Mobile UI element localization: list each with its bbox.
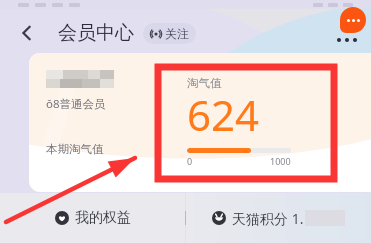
button[interactable]: Back: [10, 16, 44, 50]
staticText: 本期淘气值: [46, 142, 104, 156]
button[interactable]: Menu: [333, 36, 361, 44]
staticText: 天猫积分 1.: [232, 209, 304, 228]
staticText: 1000: [270, 155, 291, 167]
staticText: ŏ8普通会员: [46, 96, 106, 112]
button[interactable]: 我的权益: [0, 193, 185, 243]
staticText: 淘气值: [187, 76, 222, 90]
button[interactable]: 关注: [143, 23, 196, 44]
staticText: 我的权益: [75, 209, 131, 227]
staticText: 关注: [165, 26, 189, 41]
staticText: 624: [187, 86, 260, 143]
button[interactable]: 天猫积分 1.: [186, 193, 371, 243]
button[interactable]: ŏ8普通会员: [29, 53, 371, 192]
button[interactable]: More options: [340, 7, 366, 33]
staticText: 0: [187, 155, 193, 167]
staticText: 会员中心: [58, 21, 134, 45]
